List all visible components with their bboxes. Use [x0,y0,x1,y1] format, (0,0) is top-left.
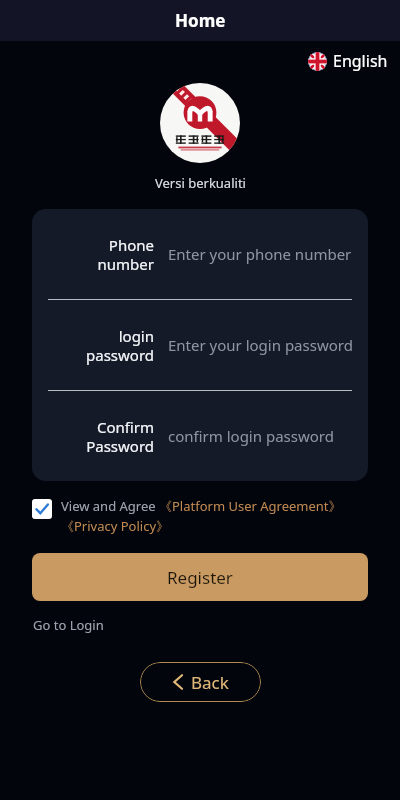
staticText: login password [48,326,154,365]
button[interactable]: Agree checkbox [32,497,374,535]
other: Back [173,674,184,690]
staticText: Confirm Password [48,417,154,456]
button[interactable]: Register [32,553,368,601]
button[interactable]: English [306,48,390,74]
button[interactable]: Back [140,662,261,702]
staticText: Phone number [48,235,154,274]
staticText: English [333,50,388,72]
staticText: Go to Login [33,616,104,634]
button[interactable]: Phone number [32,209,368,299]
staticText: Versi berkualiti [155,174,246,192]
staticText: confirm login password [168,426,334,446]
staticText: Home [175,9,226,32]
staticText: Register [167,566,233,589]
staticText: 《Privacy Policy》 [61,517,170,535]
staticText: 《Platform User Agreement》 [159,497,342,515]
button[interactable]: Agree checkbox [32,499,52,519]
button[interactable]: Go to Login [32,614,105,636]
staticText: Enter your phone number [168,244,352,264]
button[interactable]: Confirm Password [32,391,368,481]
staticText: View and Agree [61,497,159,515]
staticText: Back [191,671,229,694]
button[interactable]: login password [32,300,368,390]
staticText: Enter your login password [168,335,353,355]
